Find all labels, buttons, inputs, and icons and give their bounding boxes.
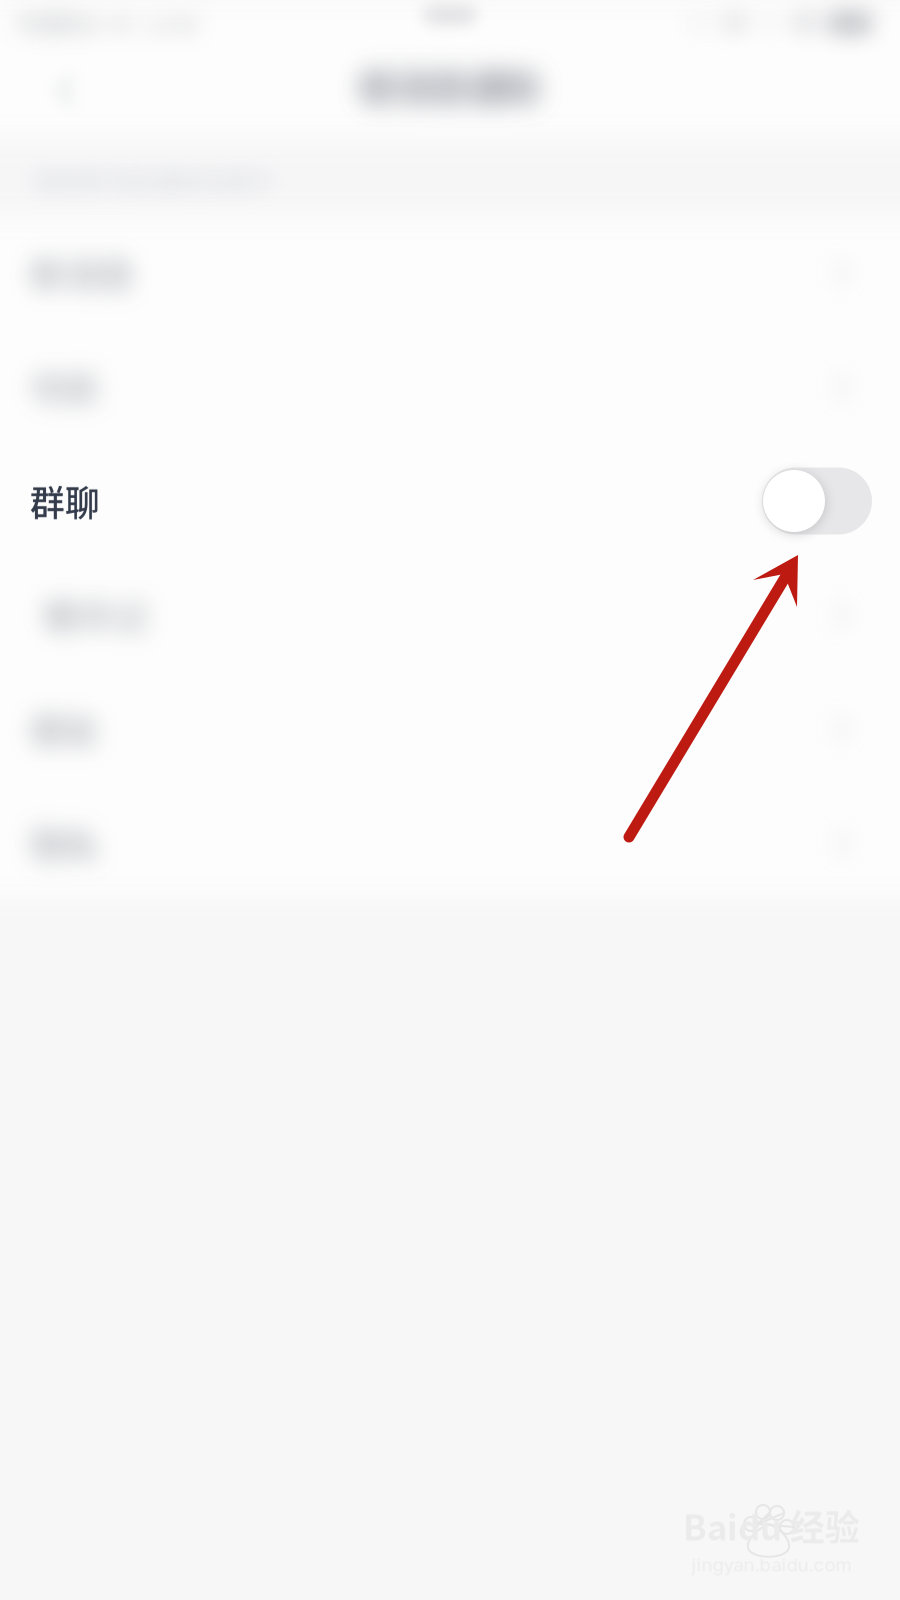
button[interactable]: 新消息 xyxy=(0,216,900,330)
button[interactable]: 朋友 xyxy=(0,672,900,786)
button[interactable]: 群聊 xyxy=(0,444,900,558)
button[interactable]: 隐私 xyxy=(0,786,900,900)
button[interactable]: 聊天记 xyxy=(0,558,900,672)
button[interactable]: 勿扰 xyxy=(0,330,900,444)
